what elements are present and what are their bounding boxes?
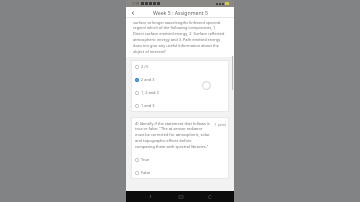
button[interactable]: True: [131, 153, 229, 166]
staticText: 4) Identify if the statement that follow…: [135, 121, 212, 150]
staticText: True: [141, 157, 150, 162]
staticText: surface at longer wavelengths (infrared …: [133, 20, 227, 55]
button[interactable]: False: [131, 166, 229, 179]
button[interactable]: Back: [205, 192, 214, 201]
button[interactable]: 1 and 3: [131, 99, 229, 112]
button[interactable]: Recent apps: [146, 192, 155, 201]
button[interactable]: 2 /3: [131, 60, 229, 73]
staticText: 1:15: [132, 1, 140, 6]
staticText: 2 /3: [141, 64, 148, 69]
staticText: False: [141, 170, 151, 175]
staticText: 2 and 3: [141, 77, 155, 82]
button[interactable]: Back: [129, 9, 137, 17]
staticText: 1, 2 and 3: [141, 90, 159, 95]
button[interactable]: 1, 2 and 3: [131, 86, 229, 99]
staticText: Week 5 : Assignment 5: [153, 9, 208, 16]
staticText: 1 point: [214, 122, 226, 127]
staticText: 1 and 3: [141, 103, 155, 108]
button[interactable]: Home: [176, 192, 185, 201]
button[interactable]: 2 and 3: [131, 73, 229, 86]
